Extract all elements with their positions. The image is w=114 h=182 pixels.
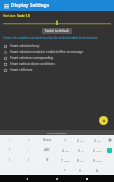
button[interactable]: Smart selection busy [0,43,114,49]
staticText: ( [9,158,10,162]
button[interactable]: 4 [57,145,73,155]
button[interactable]: Smart cell/more [0,67,114,73]
button[interactable]: 7 [57,155,73,165]
staticText: ~ [9,138,11,142]
staticText: 7 [61,158,63,163]
button[interactable]: ) [19,155,38,165]
staticText: 9 [93,158,95,163]
staticText: ABC [44,148,51,152]
staticText: Switch to default [45,29,69,33]
staticText: Display Settings [11,2,50,9]
button[interactable]: 1 [57,135,73,145]
button[interactable]: Backspace [105,135,114,145]
staticText: Smart radio at above conditions [10,62,55,66]
button[interactable]: 5 [73,145,89,155]
staticText: 4 [62,148,64,153]
button[interactable]: 0 [73,165,89,175]
button[interactable]: ABC [38,145,57,155]
staticText: Select suggestion [47,131,67,134]
staticText: Smart cell/more [10,68,33,72]
button[interactable]: Add [99,116,108,125]
button[interactable]: 3 [89,135,105,145]
button[interactable]: Smart selection corresponding [0,55,114,61]
button[interactable]: # [89,165,105,175]
staticText: JKL [81,150,85,153]
button[interactable]: + [19,135,38,145]
button[interactable]: / [0,145,19,155]
staticText: # [96,168,99,173]
staticText: 0 [79,168,81,173]
staticText: Smart selection corresponding [10,56,54,60]
button[interactable]: 9 [89,155,105,165]
button[interactable]: N [38,155,57,165]
staticText: - [28,168,30,172]
staticText: Scale 1.0 [17,14,30,18]
staticText: 8 [77,158,79,163]
staticText: Font size [3,14,17,18]
staticText: Smart selection busy [10,44,40,48]
staticText: MNO [96,150,102,153]
button[interactable]: Smart radio at above conditions [0,61,114,67]
staticText: Reset [43,138,52,142]
staticText: + [28,138,30,142]
staticText: TUV [80,160,85,163]
staticText: 6 [93,148,95,153]
staticText: PQRS [64,160,70,163]
button[interactable]: ( [0,155,19,165]
button[interactable]: Select suggestion [43,131,71,134]
staticText: GHI [65,150,69,153]
staticText: 2 [77,138,79,143]
staticText: 1 [64,138,66,143]
staticText: DEF [97,140,101,143]
button[interactable]: 8 [73,155,89,165]
staticText: : [28,148,29,152]
button[interactable]: Recents [84,176,90,182]
button[interactable]: * [57,165,73,175]
staticText: 5 [78,148,80,153]
button[interactable] [0,20,114,26]
staticText: / [9,148,11,152]
button[interactable]: Reset [38,135,57,145]
staticText: ABC [80,140,85,143]
staticText: N [46,158,49,162]
button[interactable]: 6 [89,145,105,155]
button[interactable]: Home [54,176,60,182]
button[interactable]: Open navigation menu [2,2,10,10]
button[interactable]: Smart selection modal or enabled office … [0,49,114,55]
staticText: WXYZ [96,160,102,163]
staticText: Smart selection modal or enabled office … [10,50,84,54]
staticText: + [82,170,84,173]
staticText: 3 [94,138,96,143]
button[interactable]: Switch to default [45,29,69,33]
button[interactable]: 2 [73,135,89,145]
button[interactable]: Back [24,176,30,182]
staticText: ) [28,158,29,162]
staticText: Choose the available animations to selec… [3,36,98,40]
button[interactable]: Enter [105,145,114,155]
staticText: * [64,168,66,173]
